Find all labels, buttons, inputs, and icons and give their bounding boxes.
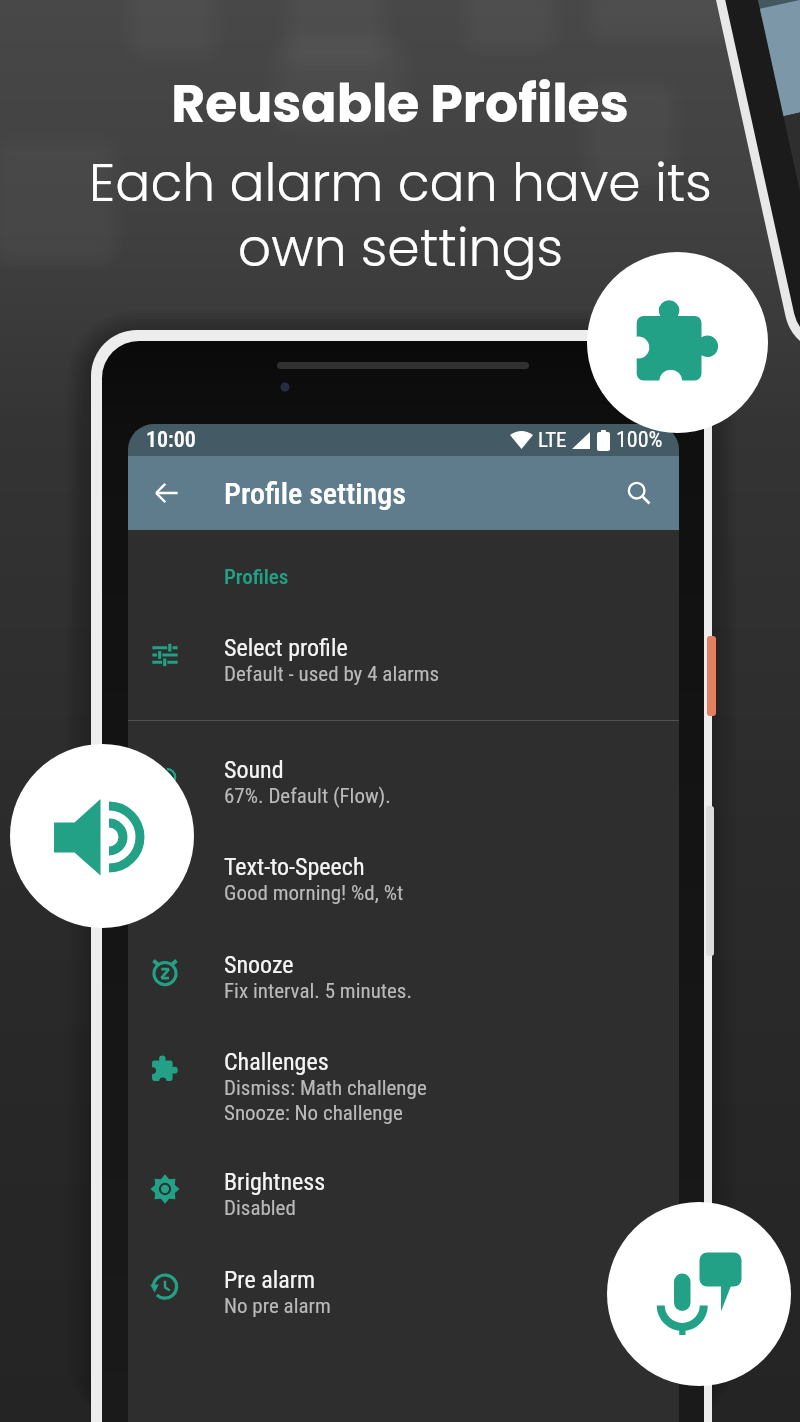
button[interactable]: Sound (128, 721, 679, 818)
staticText: Dismiss: Math challenge (224, 1076, 427, 1101)
staticText: Pre alarm (224, 1266, 316, 1294)
staticText: Brightness (224, 1168, 326, 1196)
staticText: Snooze (224, 951, 294, 979)
staticText: Default - used by 4 alarms (224, 662, 440, 687)
staticText: Profile settings (224, 476, 406, 511)
staticText: LTE (538, 428, 567, 453)
staticText: Disabled (224, 1196, 296, 1221)
staticText: 10:00 (146, 427, 196, 453)
staticText: Fix interval. 5 minutes. (224, 979, 412, 1004)
button[interactable]: Pre alarm (128, 1231, 679, 1383)
button[interactable]: Brightness (128, 1133, 679, 1231)
button[interactable]: Search (613, 467, 665, 519)
staticText: Select profile (224, 634, 348, 662)
button[interactable]: Back (139, 465, 195, 521)
staticText: Reusable Profiles (171, 67, 629, 140)
staticText: 67%. Default (Flow). (224, 784, 391, 809)
button[interactable]: Text-to-Speech (128, 818, 679, 916)
staticText: Good morning! %d, %t (224, 881, 404, 906)
staticText: Challenges (224, 1048, 329, 1076)
staticText: Each alarm can have its own settings (89, 146, 712, 285)
button[interactable]: Select profile (128, 608, 679, 720)
staticText: Snooze: No challenge (224, 1101, 403, 1126)
staticText: Sound (224, 756, 284, 784)
staticText: Profiles (224, 565, 289, 590)
staticText: No pre alarm (224, 1294, 331, 1319)
button[interactable]: Snooze (128, 916, 679, 1013)
button[interactable]: Challenges (128, 1013, 679, 1133)
staticText: 100% (616, 427, 663, 453)
staticText: Text-to-Speech (224, 853, 365, 881)
